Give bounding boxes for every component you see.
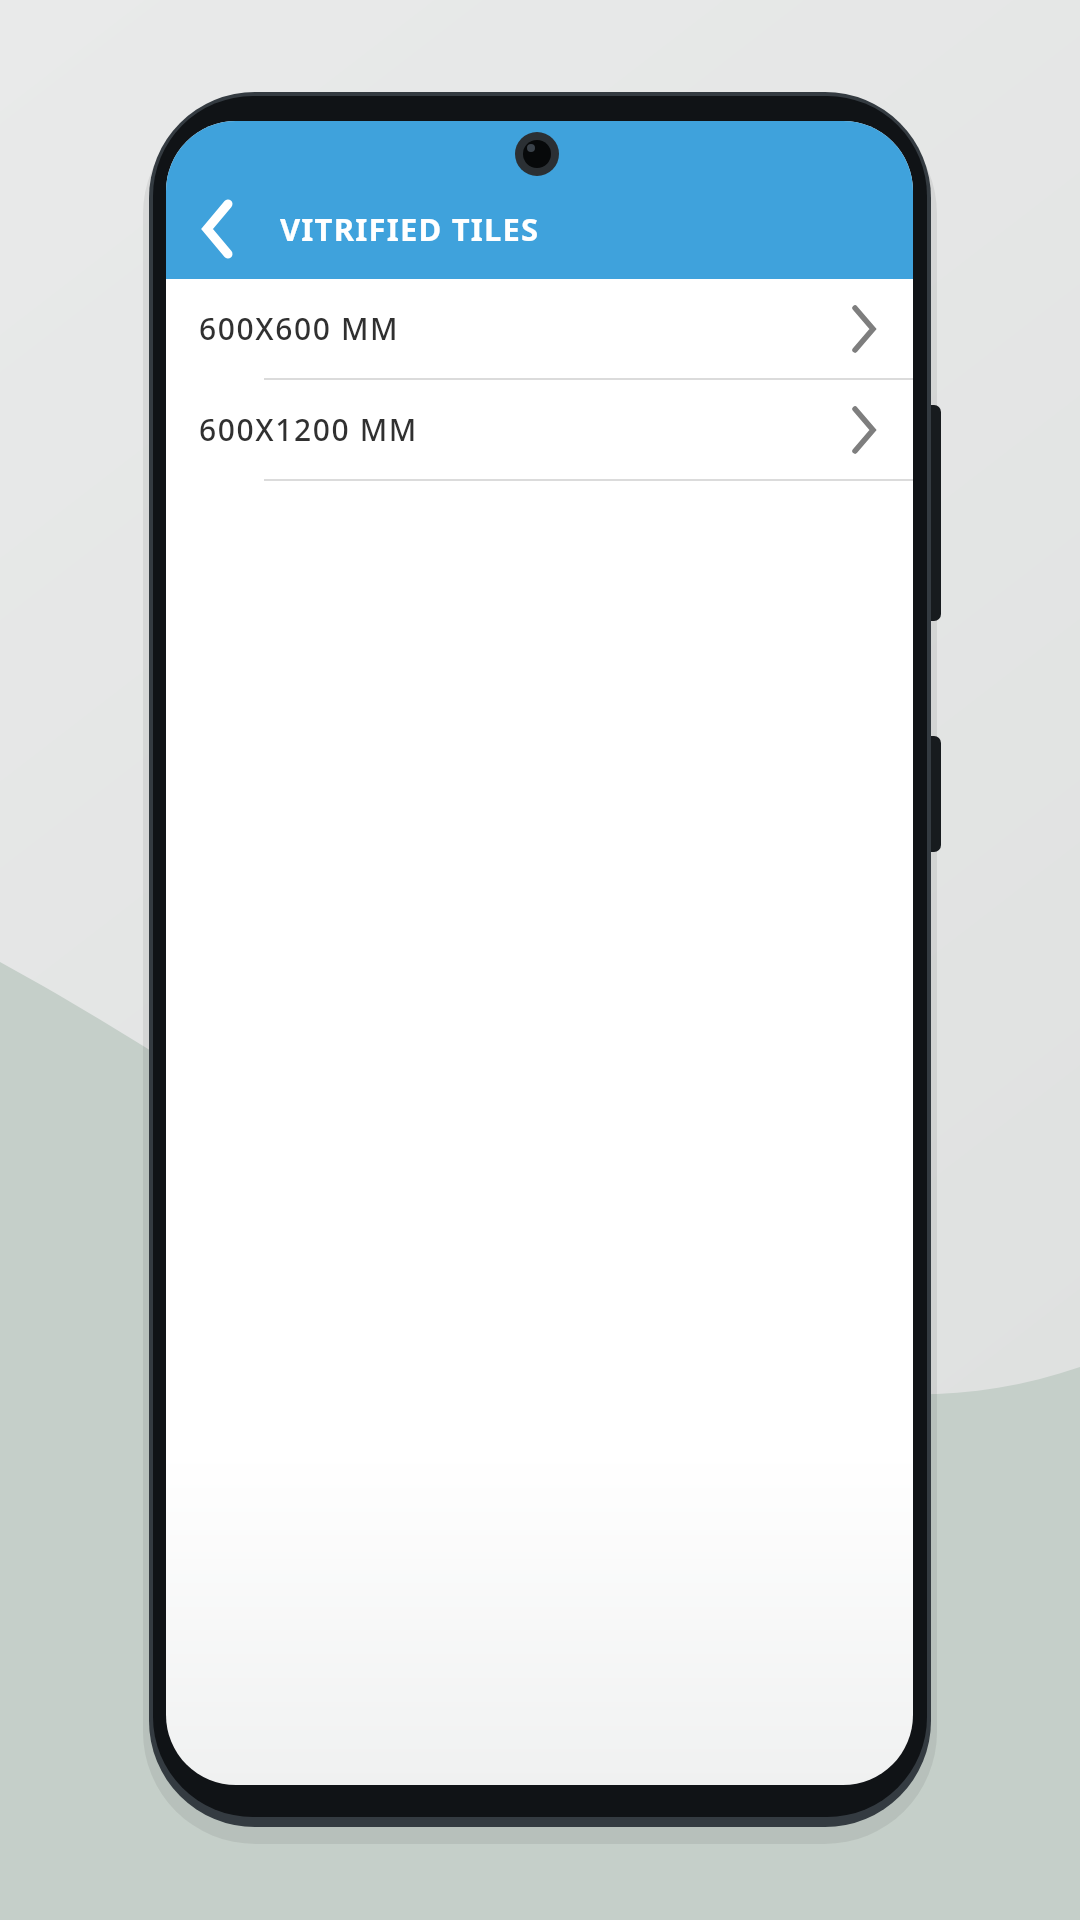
staticText: VITRIFIED TILES: [280, 208, 540, 250]
button[interactable]: 600X1200 MM: [166, 380, 913, 479]
button[interactable]: [196, 187, 238, 271]
staticText: 600X1200 MM: [199, 409, 418, 450]
button[interactable]: 600X600 MM: [166, 279, 913, 378]
staticText: 600X600 MM: [199, 308, 400, 349]
